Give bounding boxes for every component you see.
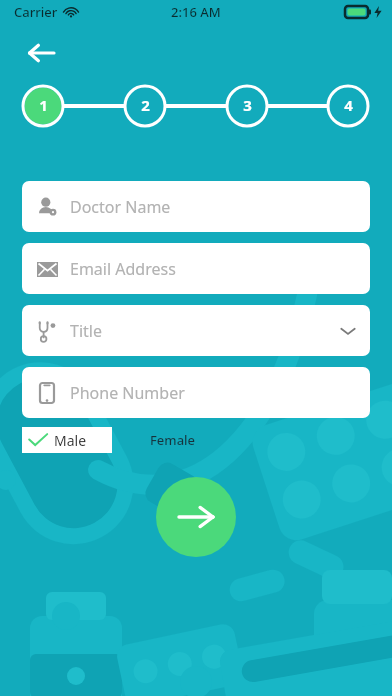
staticText: Email Address (70, 258, 356, 280)
staticText: Female (150, 431, 196, 449)
button[interactable]: Back (18, 30, 64, 76)
staticText: 2 (141, 95, 150, 115)
staticText: 3 (243, 95, 252, 115)
button[interactable]: Female (150, 427, 196, 453)
button[interactable]: 2 (125, 85, 165, 125)
staticText: Doctor Name (70, 196, 356, 218)
staticText: Phone Number (70, 382, 356, 404)
button[interactable]: Next (156, 477, 236, 557)
staticText: 1 (39, 95, 48, 115)
button[interactable]: Title (22, 305, 370, 356)
button[interactable]: 4 (328, 85, 368, 125)
staticText: 2:16 AM (171, 3, 221, 21)
button[interactable]: Phone Number (22, 367, 370, 418)
staticText: Carrier (14, 3, 58, 21)
staticText: Male (54, 431, 87, 450)
button[interactable]: 3 (227, 85, 267, 125)
staticText: Title (70, 320, 340, 342)
button[interactable]: 1 (23, 85, 63, 125)
button[interactable]: Email Address (22, 243, 370, 294)
button[interactable]: Doctor Name (22, 181, 370, 232)
staticText: 4 (344, 95, 353, 115)
button[interactable]: Male (22, 427, 112, 453)
